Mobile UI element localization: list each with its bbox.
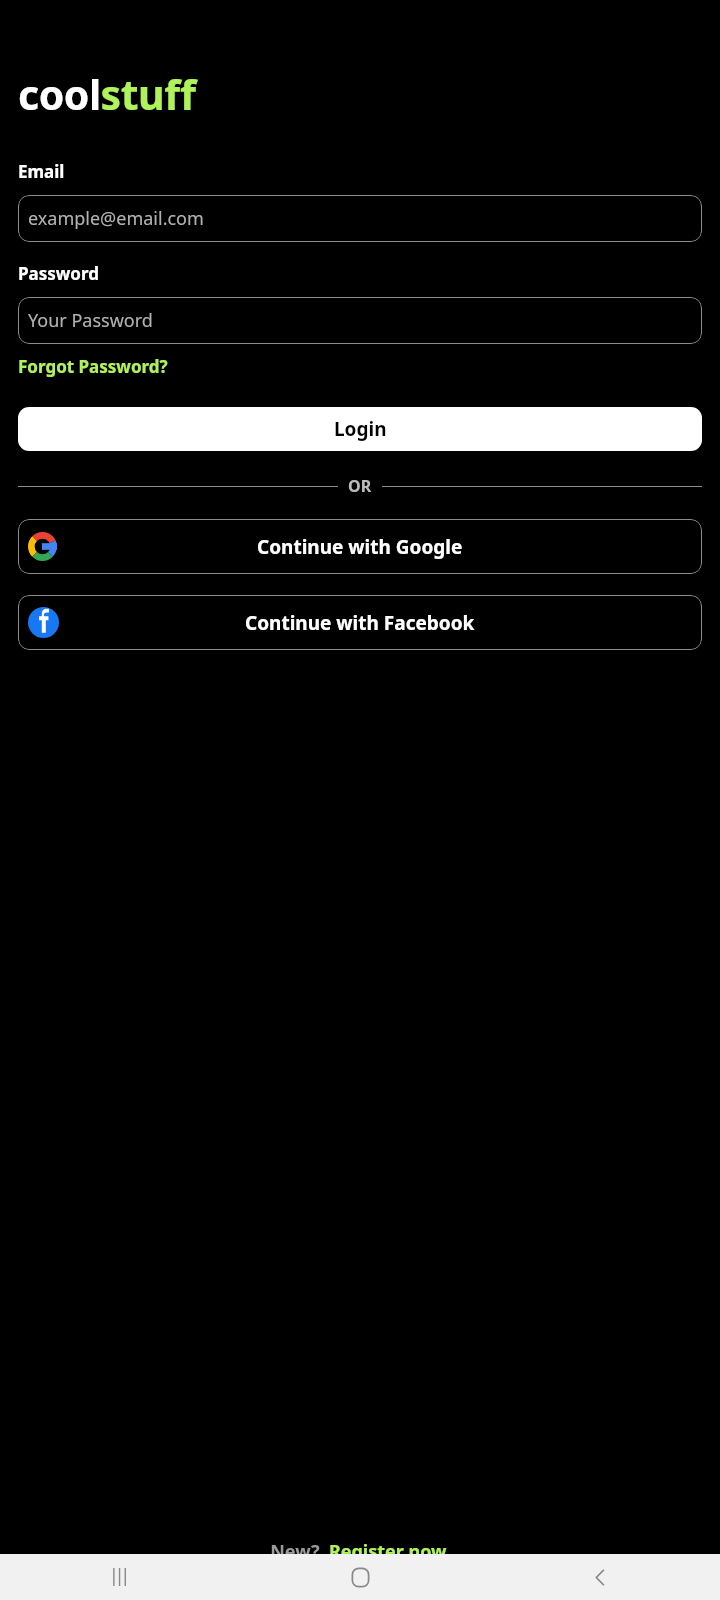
staticText: Email: [18, 160, 65, 183]
staticText: Continue with Google: [257, 534, 463, 560]
button[interactable]: Home: [240, 1554, 480, 1600]
button[interactable]: Continue with Facebook: [18, 595, 702, 650]
staticText: Forgot Password?: [18, 355, 168, 378]
button[interactable]: New? Register now.: [268, 1537, 453, 1566]
staticText: example@email.com: [28, 206, 204, 231]
button[interactable]: Continue with Google: [18, 519, 702, 574]
button[interactable]: Your Password: [18, 297, 702, 344]
button[interactable]: example@email.com: [18, 195, 702, 242]
staticText: OR: [348, 475, 372, 497]
button[interactable]: Back: [480, 1554, 720, 1600]
button[interactable]: Login: [18, 407, 702, 451]
staticText: New? Register now.: [270, 1539, 451, 1564]
staticText: coolstuff: [18, 66, 196, 122]
staticText: Password: [18, 262, 99, 285]
staticText: Login: [334, 416, 387, 442]
button[interactable]: Recent apps: [0, 1554, 240, 1600]
button[interactable]: Forgot Password?: [18, 352, 168, 381]
staticText: Continue with Facebook: [245, 610, 475, 636]
staticText: Your Password: [28, 308, 153, 333]
